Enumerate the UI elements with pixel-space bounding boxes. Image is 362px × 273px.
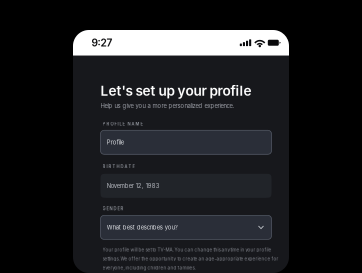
staticText: November 12, 1983 — [107, 182, 160, 189]
button[interactable]: November 12, 1983 — [100, 174, 271, 198]
staticText: everyone, including children and familie… — [102, 265, 195, 271]
staticText: settings. We offer the opportunity to cr… — [102, 256, 278, 262]
staticText: 9:27 — [91, 37, 112, 49]
staticText: P R O F I L E N A M E — [102, 121, 142, 126]
staticText: Let's set up your profile — [100, 83, 251, 99]
staticText: Your profile will be set to TV-MA. You c… — [102, 247, 271, 252]
button[interactable]: Profile — [100, 130, 271, 154]
staticText: What best describes you? — [107, 224, 178, 231]
staticText: G E N D E R — [102, 206, 123, 211]
button[interactable]: What best describes you? — [100, 215, 271, 239]
staticText: Help us give you a more personalized exp… — [100, 102, 234, 109]
staticText: B I R T H D A T E — [102, 164, 134, 169]
staticText: Profile — [107, 139, 124, 146]
